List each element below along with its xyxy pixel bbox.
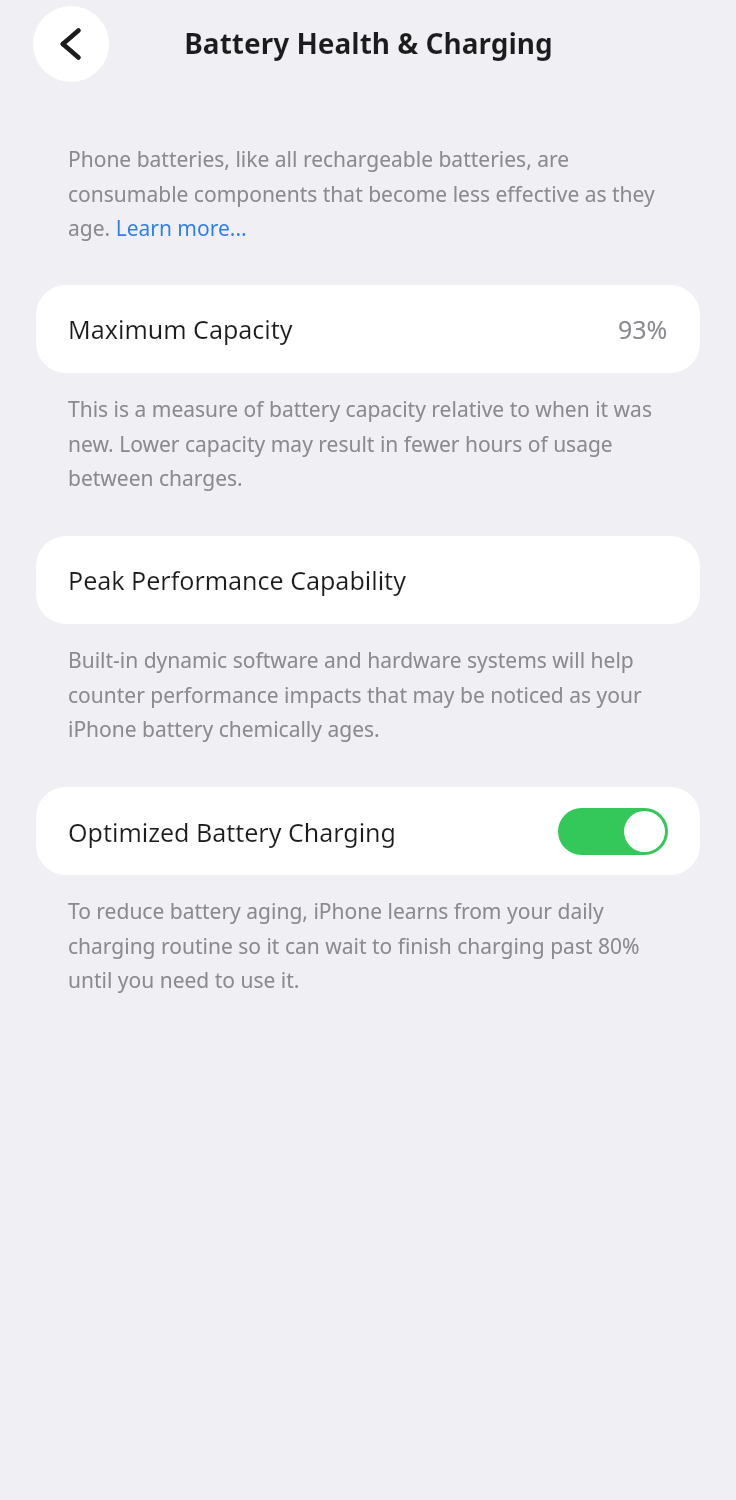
button[interactable]: Phone batteries, like all rechargeable b… xyxy=(68,145,656,242)
button[interactable]: Back xyxy=(33,6,109,82)
staticText: Maximum Capacity xyxy=(68,312,293,346)
staticText: Battery Health & Charging xyxy=(184,24,553,62)
staticText: Peak Performance Capability xyxy=(68,563,406,597)
button[interactable]: Peak Performance Capability xyxy=(36,536,700,624)
staticText: Built-in dynamic software and hardware s… xyxy=(68,646,668,743)
staticText: To reduce battery aging, iPhone learns f… xyxy=(68,897,658,994)
button[interactable]: Maximum Capacity xyxy=(36,285,700,373)
staticText: 93% xyxy=(618,312,668,346)
staticText: Optimized Battery Charging xyxy=(68,815,396,849)
button[interactable]: Optimized Battery Charging xyxy=(36,787,700,875)
button[interactable]: Optimized Battery Charging toggle xyxy=(558,808,668,855)
staticText: This is a measure of battery capacity re… xyxy=(68,395,658,492)
